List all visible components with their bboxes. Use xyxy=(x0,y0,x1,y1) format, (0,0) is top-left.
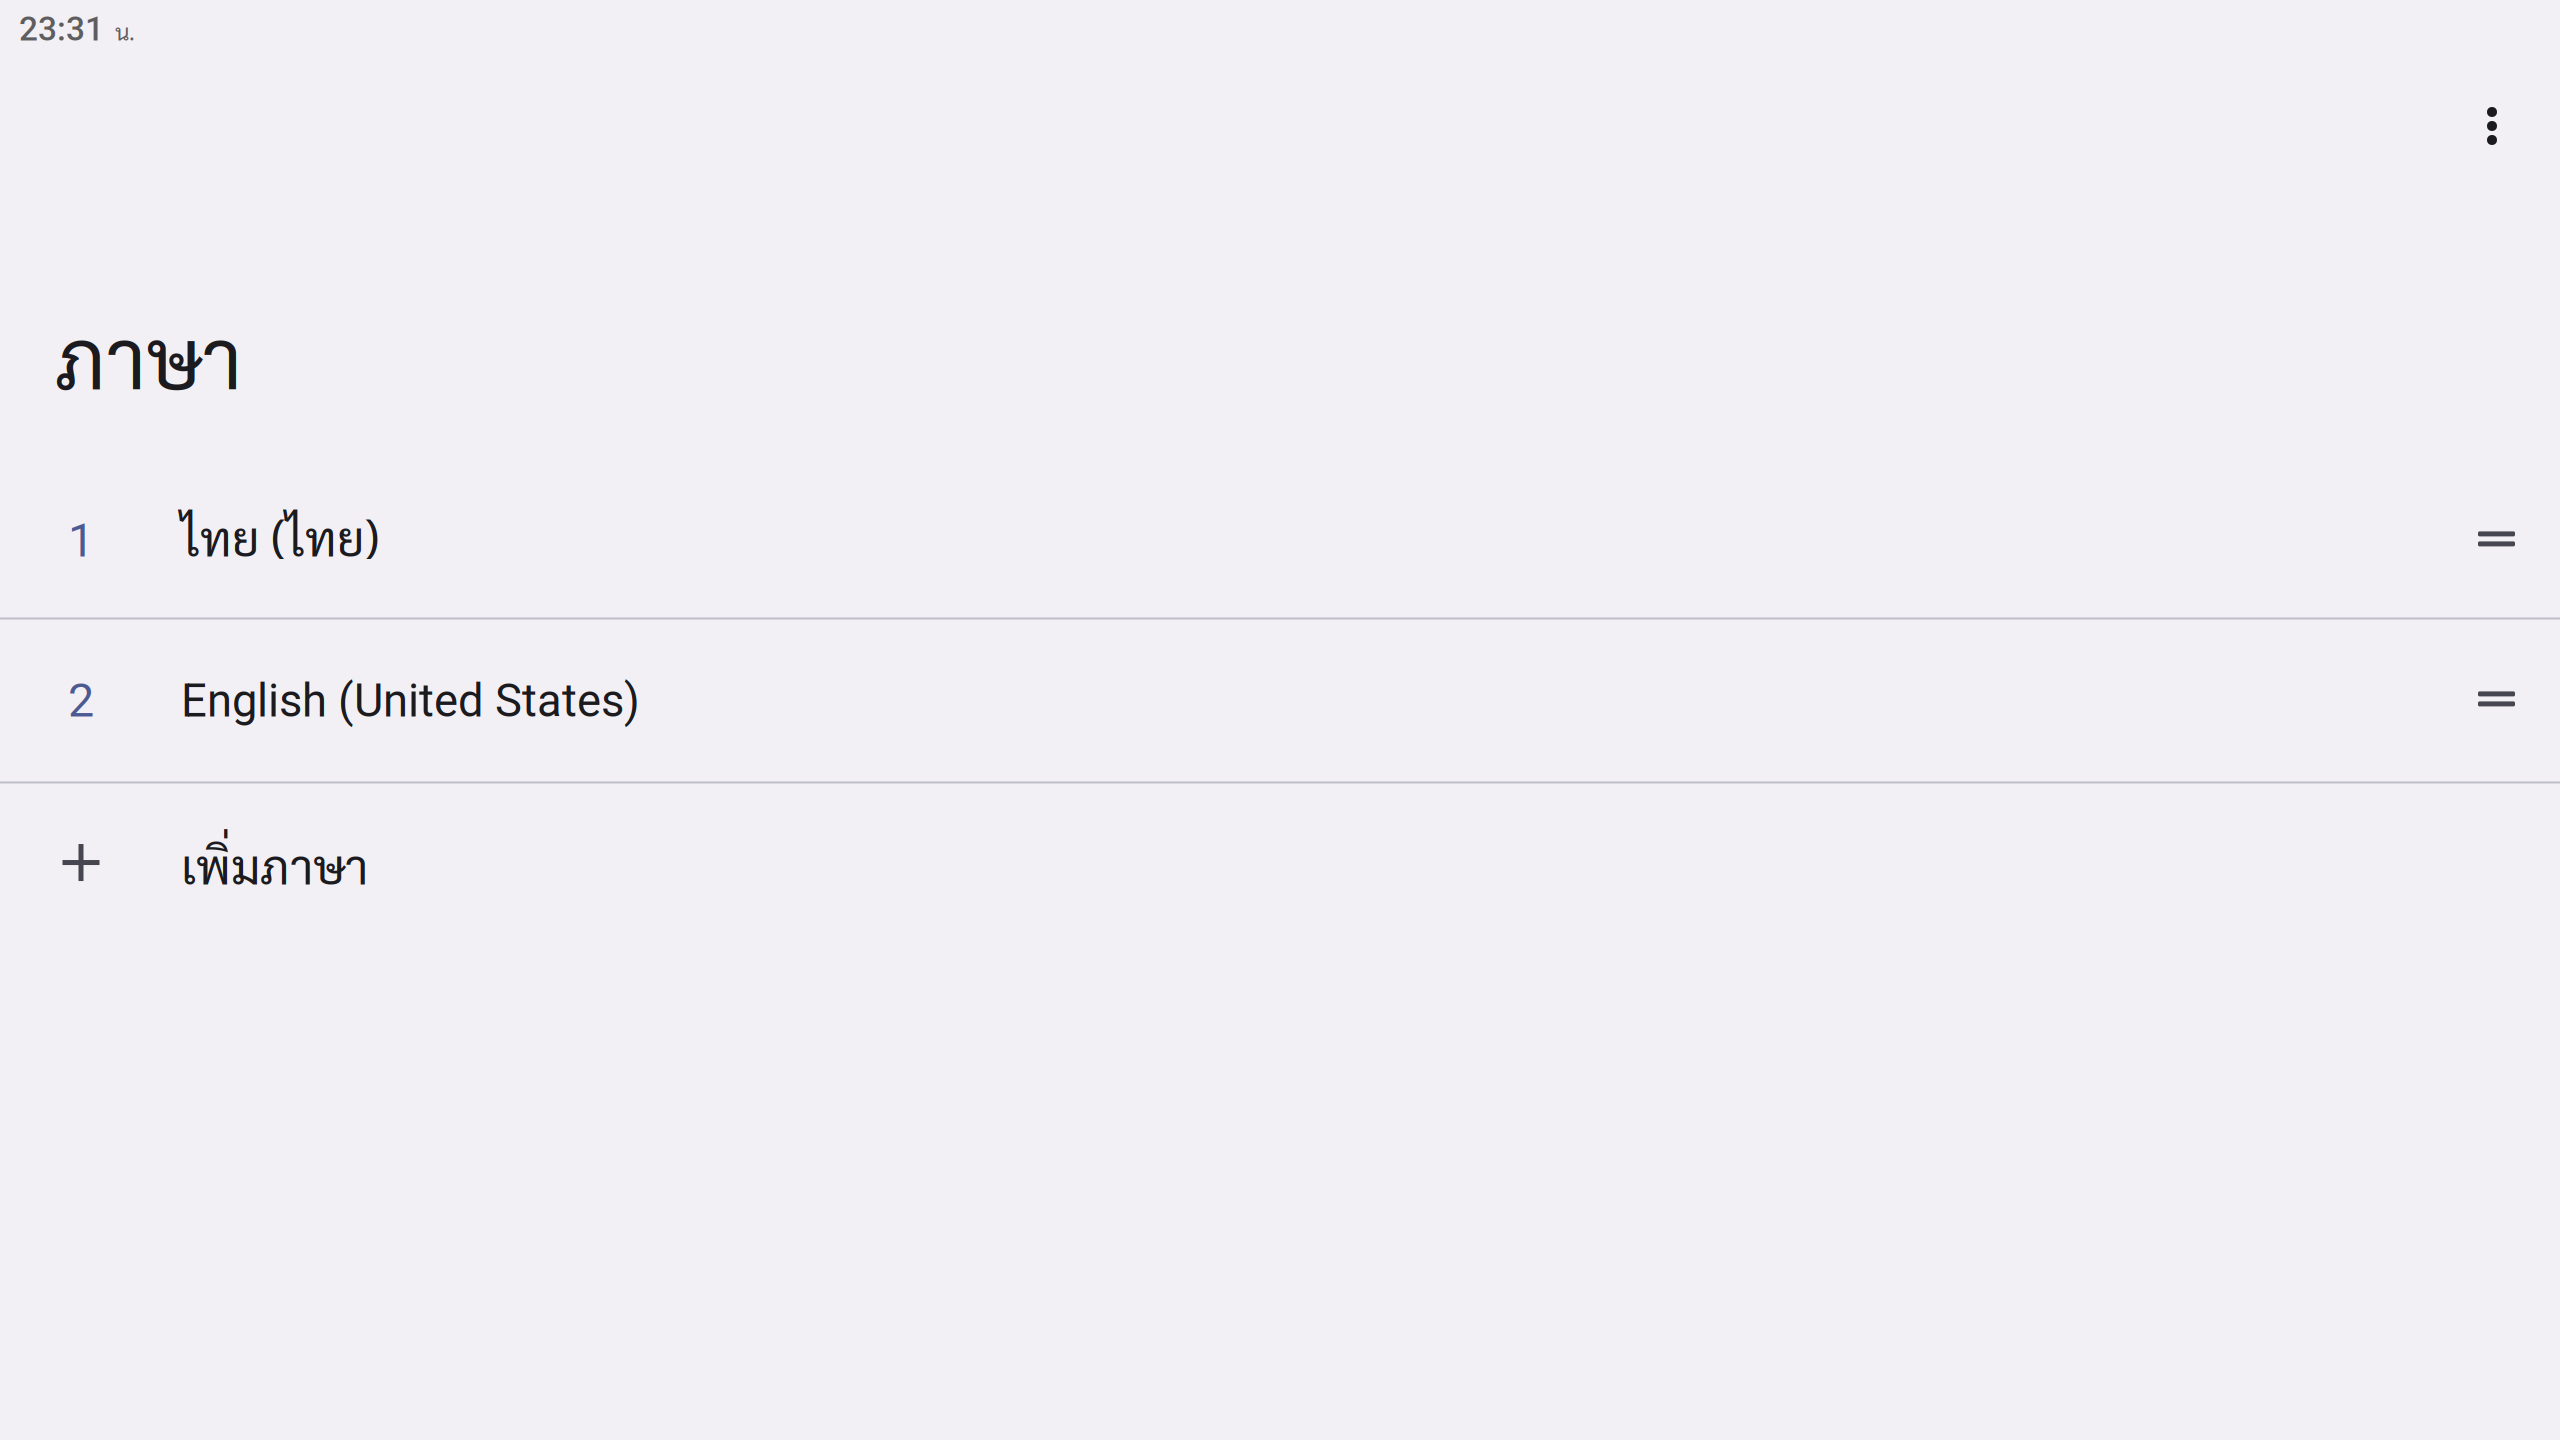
button[interactable]: เพิ่มภาษา xyxy=(0,783,2560,945)
staticText: ภาษา xyxy=(55,301,242,408)
staticText: น. xyxy=(115,16,135,46)
staticText: English (United States) xyxy=(181,674,640,727)
button[interactable]: More options xyxy=(2437,66,2547,176)
staticText: 2 xyxy=(68,673,94,728)
staticText: 1 xyxy=(68,513,94,568)
button[interactable]: 1 xyxy=(0,455,2560,617)
button[interactable]: 2 xyxy=(0,619,2560,781)
staticText: ไทย (ไทย) xyxy=(181,505,379,567)
staticText: 23:31 xyxy=(19,9,104,49)
staticText: เพิ่มภาษา xyxy=(181,833,368,896)
